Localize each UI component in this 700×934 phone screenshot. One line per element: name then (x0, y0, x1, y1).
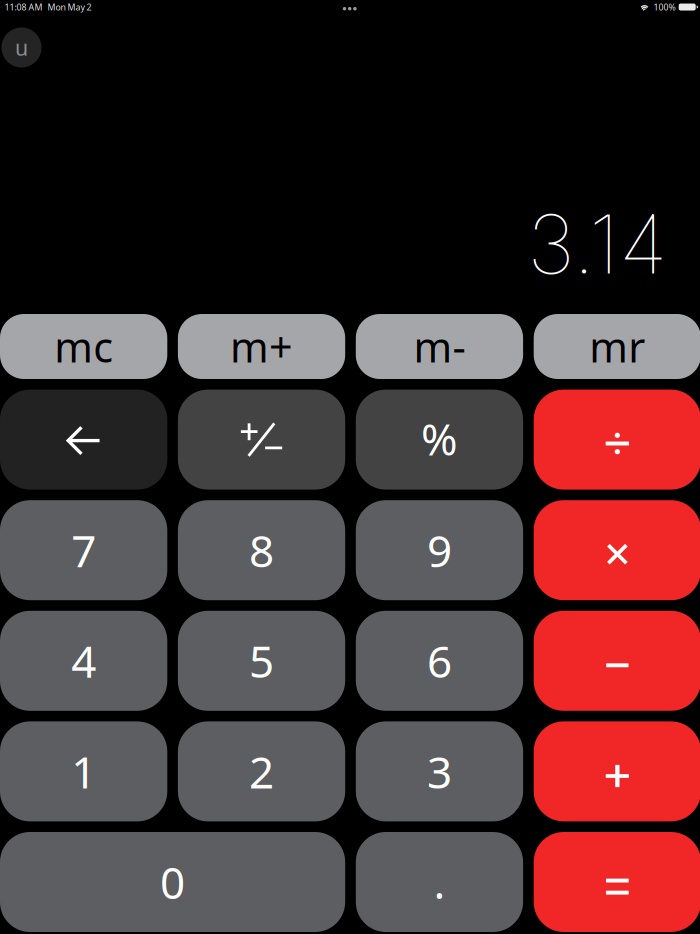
button[interactable]: 9 (356, 500, 523, 600)
button[interactable]: . (356, 832, 523, 932)
button[interactable]: Multiply (534, 500, 700, 600)
staticText: mr (589, 319, 645, 374)
staticText: . (433, 853, 445, 911)
staticText: % (421, 409, 458, 468)
button[interactable]: Account (1, 27, 41, 67)
button[interactable]: m- (356, 314, 523, 379)
button[interactable]: Toggle sign (178, 390, 345, 490)
staticText: 11:08 AM (4, 1, 42, 13)
staticText: 8 (249, 521, 274, 579)
staticText: 6 (427, 632, 452, 690)
staticText: 1 (71, 742, 96, 801)
button[interactable]: Backspace (0, 390, 167, 490)
staticText: m- (413, 319, 465, 374)
button[interactable]: % (356, 390, 523, 490)
button[interactable]: Add (534, 721, 700, 821)
staticText: 3 (427, 742, 452, 801)
staticText: 2 (249, 742, 274, 801)
staticText: 3.14 (526, 195, 667, 293)
button[interactable]: 7 (0, 500, 167, 600)
staticText: 9 (427, 521, 452, 579)
staticText: Mon May 2 (47, 1, 91, 13)
staticText: 7 (71, 521, 96, 579)
button[interactable]: 4 (0, 611, 167, 711)
staticText: 5 (249, 632, 274, 690)
button[interactable]: 1 (0, 721, 167, 821)
staticText: 0 (160, 853, 185, 911)
button[interactable]: 5 (178, 611, 345, 711)
button[interactable]: Divide (534, 390, 700, 490)
button[interactable]: Subtract (534, 611, 700, 711)
button[interactable]: 2 (178, 721, 345, 821)
button[interactable]: m+ (178, 314, 345, 379)
button[interactable]: Equals (534, 832, 700, 932)
button[interactable]: mr (534, 314, 700, 379)
button[interactable]: 8 (178, 500, 345, 600)
staticText: 100% (653, 1, 675, 13)
staticText: u (15, 33, 28, 62)
staticText: m+ (230, 319, 293, 374)
button[interactable]: 3 (356, 721, 523, 821)
staticText: 4 (71, 632, 96, 690)
button[interactable]: mc (0, 314, 167, 379)
button[interactable]: 6 (356, 611, 523, 711)
staticText: mc (54, 319, 113, 374)
button[interactable]: 0 (0, 832, 345, 932)
